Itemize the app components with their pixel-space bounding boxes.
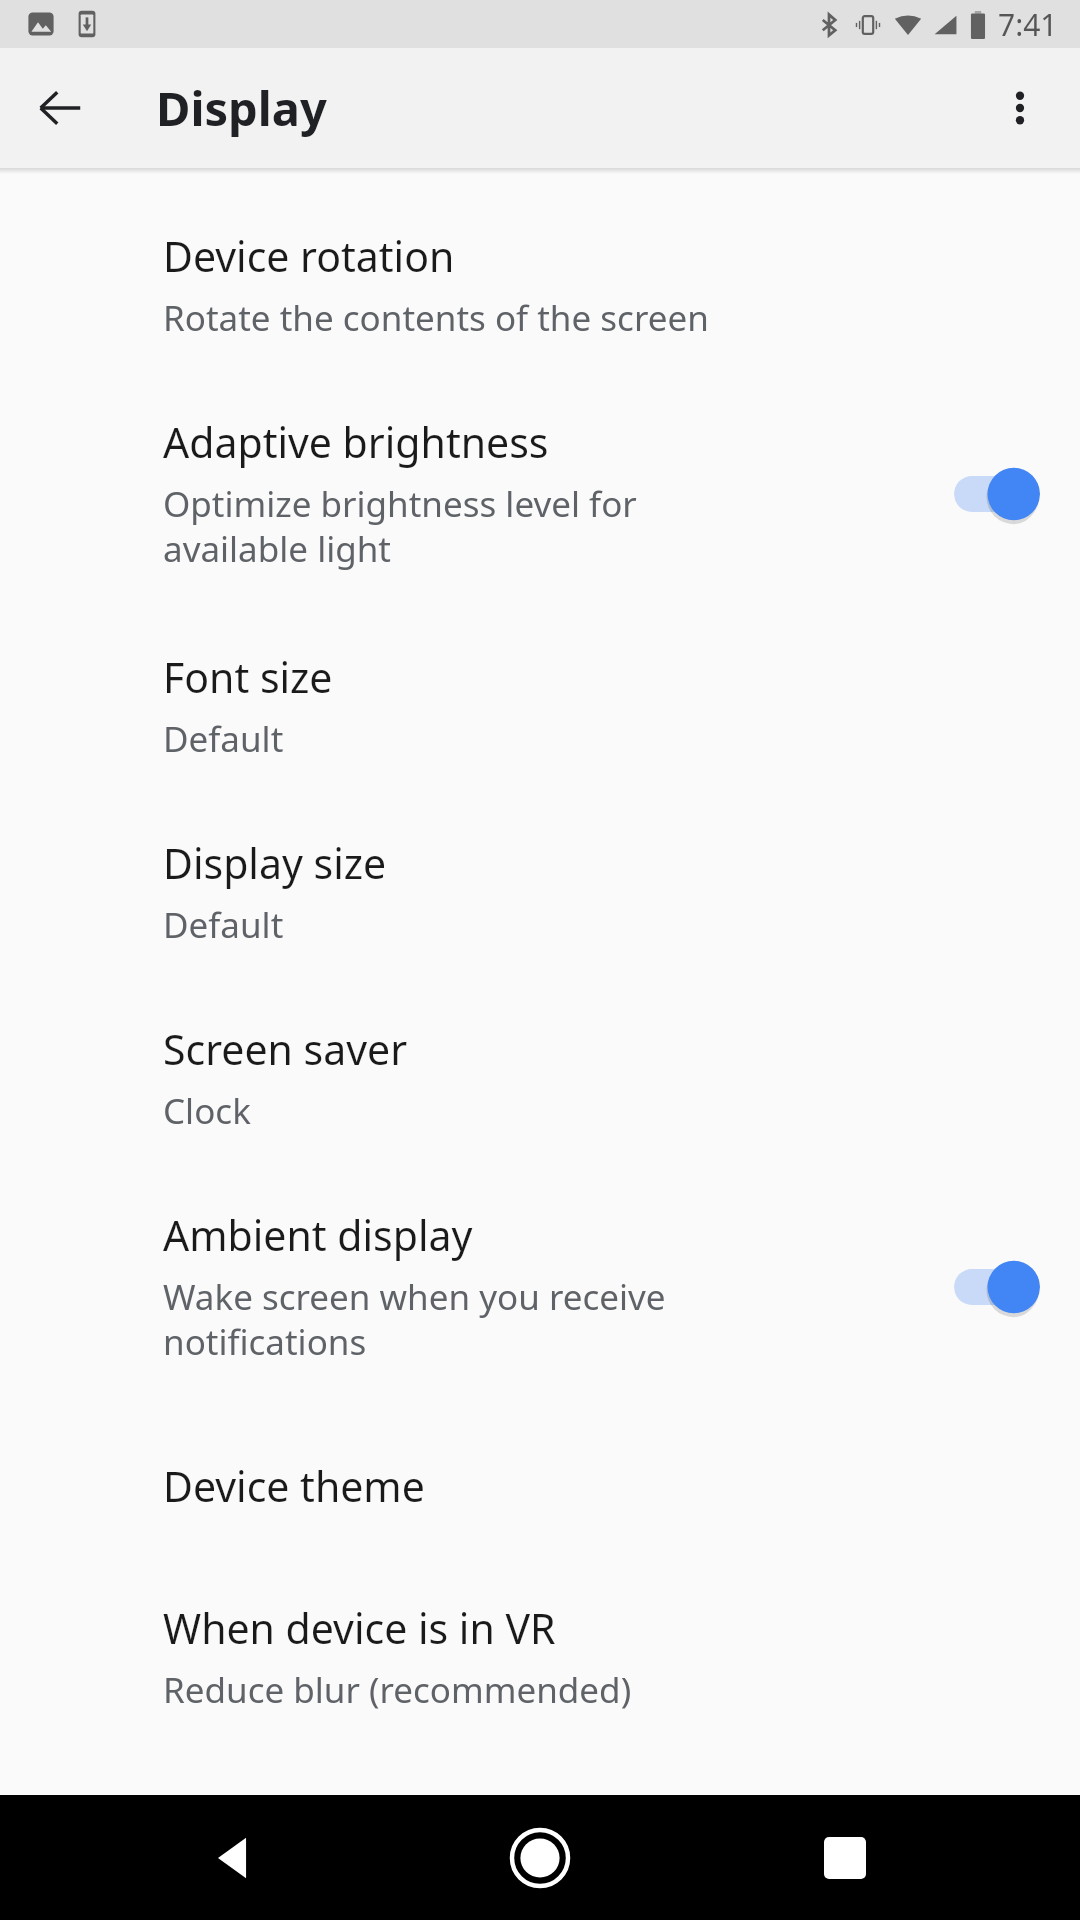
staticText: Default	[163, 901, 284, 949]
staticText: Adaptive brightness	[163, 414, 549, 470]
staticText: Display size	[163, 835, 387, 891]
staticText: Ambient display	[163, 1207, 473, 1263]
button[interactable]: When device is in VR	[0, 1566, 1080, 1750]
staticText: Reduce blur (recommended)	[163, 1666, 632, 1714]
staticText: Default	[163, 715, 284, 763]
staticText: Rotate the contents of the screen	[163, 294, 709, 342]
button[interactable]: Back	[175, 1798, 295, 1918]
button[interactable]: Font size	[0, 609, 1080, 799]
staticText: Device rotation	[163, 228, 455, 284]
button[interactable]: Device rotation	[0, 188, 1080, 378]
staticText: Wake screen when you receive notificatio…	[163, 1273, 666, 1366]
staticText: Optimize brightness level for available …	[163, 480, 637, 573]
button[interactable]: Display size	[0, 799, 1080, 985]
staticText: 7:41	[998, 4, 1058, 45]
staticText: Clock	[163, 1087, 251, 1135]
button[interactable]: Home	[480, 1798, 600, 1918]
staticText: Device theme	[163, 1458, 425, 1514]
button[interactable]: Adaptive brightness	[0, 378, 1080, 609]
button[interactable]: Ambient display	[0, 1171, 1080, 1406]
button[interactable]: Screen saver	[0, 985, 1080, 1171]
staticText: Display	[156, 76, 327, 140]
button[interactable]: Back	[24, 72, 96, 144]
button[interactable]: More options	[982, 70, 1058, 146]
staticText: When device is in VR	[163, 1600, 556, 1656]
button[interactable]: Toggle	[954, 1255, 1040, 1319]
staticText: Screen saver	[163, 1021, 408, 1077]
button[interactable]: Device theme	[0, 1406, 1080, 1566]
button[interactable]: Recent apps	[785, 1798, 905, 1918]
staticText: Font size	[163, 649, 333, 705]
button[interactable]: Toggle	[954, 462, 1040, 526]
